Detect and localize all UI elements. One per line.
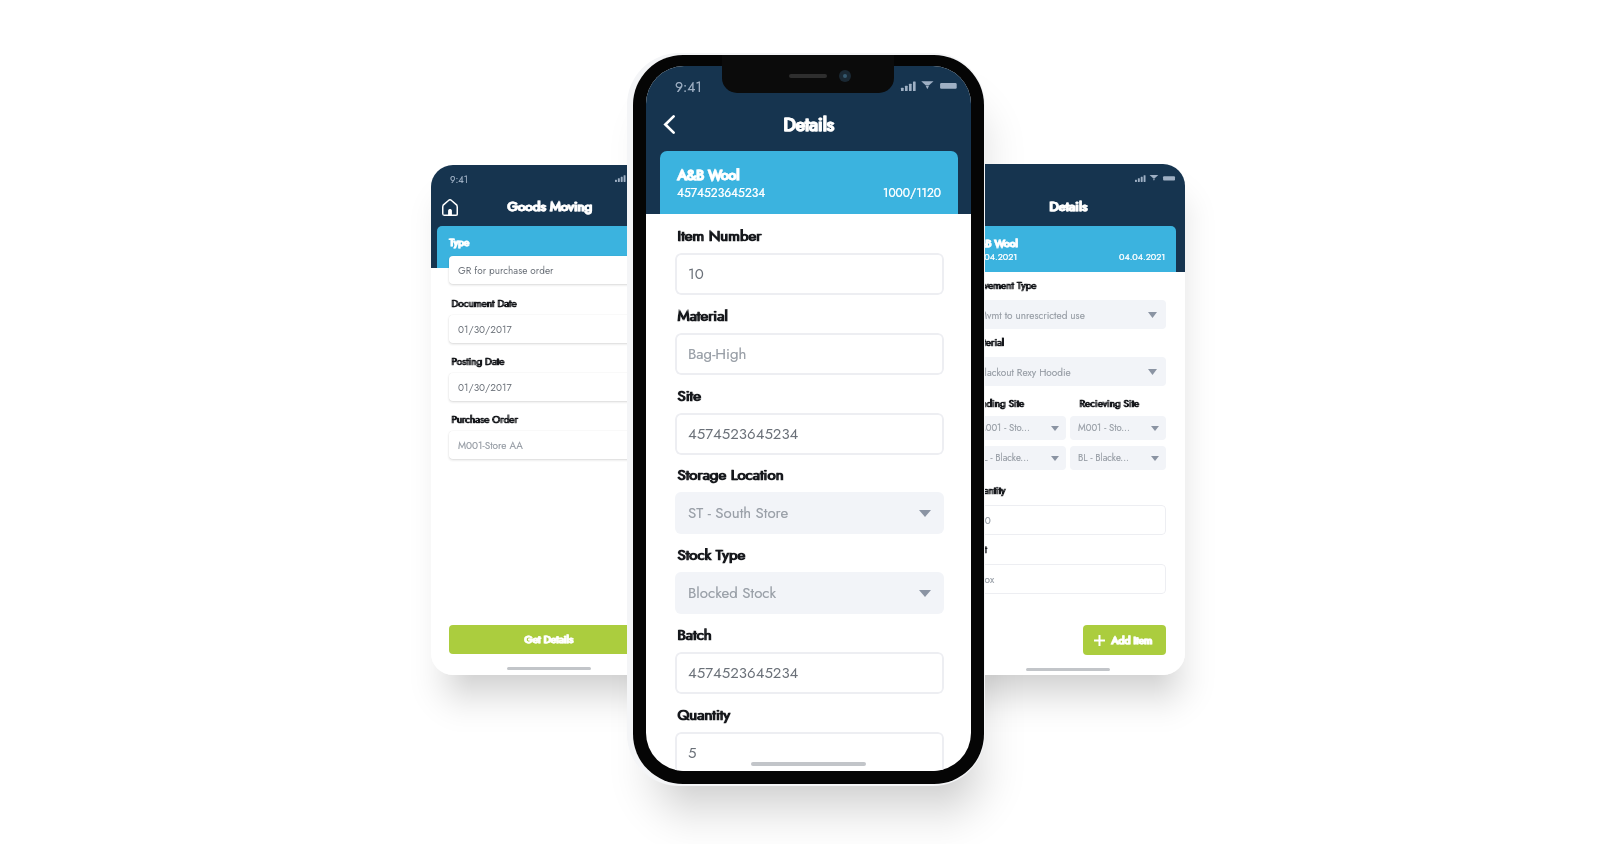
staticText: 20: [979, 513, 991, 527]
staticText: Material: [677, 305, 728, 327]
staticText: 5: [688, 742, 931, 764]
button[interactable]: A&B Wool: [961, 226, 1176, 272]
button[interactable]: M001 - Sto...: [970, 416, 1066, 440]
staticText: M001-Store AA: [458, 438, 630, 452]
button[interactable]: Mvmt to unrescricted use: [970, 300, 1166, 329]
staticText: Blackout Rexy Hoodie: [979, 365, 1148, 379]
staticText: Box: [979, 572, 995, 586]
staticText: Stock Type: [678, 544, 746, 566]
button[interactable]: Blackout Rexy Hoodie: [970, 357, 1166, 386]
button[interactable]: Home: [436, 194, 463, 221]
staticText: Recieving Site: [1080, 396, 1140, 410]
button[interactable]: 10: [675, 253, 944, 295]
staticText: 4574523645234: [688, 662, 931, 684]
button[interactable]: ST - South Store: [675, 492, 944, 534]
staticText: 9:41: [450, 173, 469, 187]
staticText: Get Details: [524, 632, 573, 647]
staticText: Batch: [677, 624, 712, 646]
button[interactable]: M001-Store AA: [449, 431, 647, 459]
staticText: Details: [1050, 197, 1088, 217]
staticText: Quantity: [971, 483, 1007, 497]
staticText: Details: [784, 112, 835, 138]
button[interactable]: Back: [655, 110, 683, 138]
staticText: Type: [449, 235, 469, 249]
staticText: Add Item: [1111, 633, 1152, 648]
button[interactable]: GR for purchase order: [449, 256, 647, 284]
staticText: Purchase Order: [452, 412, 519, 426]
staticText: Get Details: [525, 632, 574, 647]
staticText: Sending Site: [971, 396, 1025, 410]
staticText: Quantity: [677, 704, 730, 726]
staticText: 01/30/2017: [458, 322, 630, 336]
staticText: ST - South Store: [688, 502, 919, 524]
staticText: Sending Site: [970, 396, 1024, 410]
staticText: Site: [677, 385, 701, 407]
staticText: Item Number: [677, 225, 761, 247]
staticText: Posting Date: [452, 354, 505, 368]
staticText: 4574523645234: [677, 184, 766, 201]
staticText: BL - Blacke...: [978, 451, 1051, 465]
staticText: 1000/1120: [883, 184, 942, 201]
staticText: Material: [970, 335, 1004, 349]
staticText: A&B Wool: [678, 165, 740, 185]
button[interactable]: BL - Blacke...: [1070, 446, 1166, 470]
staticText: Material: [678, 305, 729, 327]
button[interactable]: 4574523645234: [675, 413, 944, 455]
button[interactable]: Box: [970, 564, 1166, 594]
staticText: Unit: [970, 542, 987, 556]
button[interactable]: 01/30/2017: [449, 373, 647, 401]
staticText: Details: [1049, 197, 1087, 217]
button[interactable]: 01/30/2017: [449, 315, 647, 343]
staticText: Quantity: [678, 704, 731, 726]
staticText: Document Date: [452, 296, 518, 310]
button[interactable]: Blocked Stock: [675, 572, 944, 614]
staticText: A&B Wool: [971, 236, 1018, 251]
staticText: Purchase Order: [451, 412, 518, 426]
staticText: Movement Type: [970, 278, 1037, 292]
staticText: Bag-High: [688, 343, 931, 365]
button[interactable]: 4574523645234: [675, 652, 944, 694]
staticText: Storage Location: [678, 464, 785, 486]
button[interactable]: Add Item: [1083, 625, 1166, 655]
button[interactable]: 20: [970, 505, 1166, 535]
staticText: GR for purchase order: [458, 263, 631, 277]
staticText: Material: [971, 335, 1005, 349]
staticText: Storage Location: [677, 464, 784, 486]
staticText: Blocked Stock: [688, 582, 919, 604]
button[interactable]: Type: [437, 226, 659, 268]
staticText: Goods Moving: [507, 197, 592, 217]
staticText: 9:41: [675, 77, 702, 97]
staticText: 01/30/2017: [458, 380, 630, 394]
button[interactable]: BL - Blacke...: [970, 446, 1066, 470]
staticText: Batch: [678, 624, 713, 646]
staticText: BL - Blacke...: [1078, 451, 1151, 465]
staticText: 10: [688, 263, 931, 285]
button[interactable]: A&B Wool: [660, 151, 958, 214]
button[interactable]: M001 - Sto...: [1070, 416, 1166, 440]
button[interactable]: Get Details: [449, 625, 647, 654]
staticText: Recieving Site: [1079, 396, 1139, 410]
staticText: A&B Wool: [972, 236, 1019, 251]
staticText: Posting Date: [451, 354, 504, 368]
staticText: Document Date: [451, 296, 517, 310]
staticText: Unit: [971, 542, 988, 556]
staticText: Stock Type: [677, 544, 745, 566]
staticText: 04.04.2021: [971, 250, 1018, 263]
staticText: M001 - Sto...: [978, 421, 1051, 435]
staticText: Movement Type: [971, 278, 1038, 292]
staticText: Add Item: [1112, 633, 1153, 648]
staticText: Mvmt to unrescricted use: [979, 308, 1148, 322]
staticText: A&B Wool: [677, 165, 739, 185]
staticText: Site: [678, 385, 702, 407]
staticText: M001 - Sto...: [1078, 421, 1151, 435]
staticText: Details: [783, 112, 834, 138]
button[interactable]: Bag-High: [675, 333, 944, 375]
staticText: Quantity: [970, 483, 1006, 497]
staticText: Type: [450, 235, 470, 249]
staticText: 04.04.2021: [1119, 250, 1166, 263]
staticText: Item Number: [678, 225, 762, 247]
button[interactable]: 5: [675, 732, 944, 771]
staticText: 4574523645234: [688, 423, 931, 445]
staticText: Goods Moving: [508, 197, 593, 217]
